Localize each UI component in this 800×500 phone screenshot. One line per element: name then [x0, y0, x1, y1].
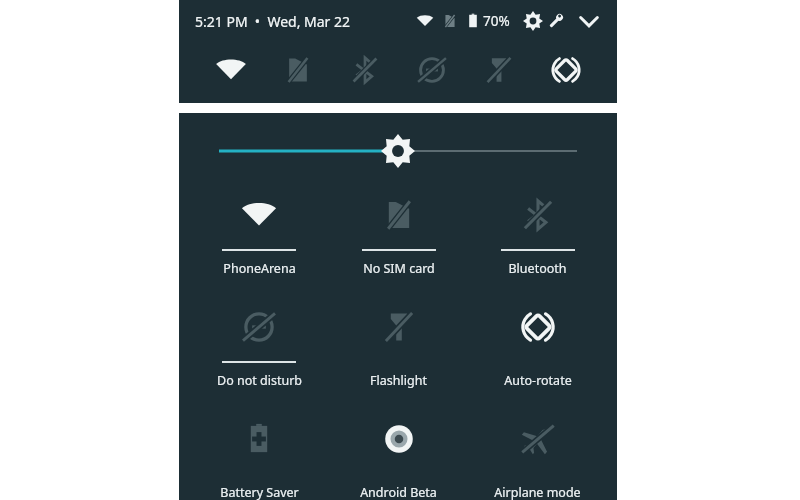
- button[interactable]: Expand: [577, 9, 601, 33]
- button[interactable]: Do not disturb: [398, 46, 465, 94]
- button[interactable]: Flashlight: [465, 46, 532, 94]
- button[interactable]: Auto-rotate: [468, 299, 607, 389]
- button[interactable]: Do not disturb: [189, 299, 329, 389]
- button[interactable]: Bluetooth: [468, 187, 607, 277]
- button[interactable]: Flashlight: [329, 299, 468, 389]
- staticText: 5:21 PM • Wed, Mar 22: [195, 12, 351, 31]
- button[interactable]: Bluetooth: [331, 46, 398, 94]
- staticText: Do not disturb: [217, 372, 302, 389]
- staticText: Auto-rotate: [504, 372, 572, 389]
- staticText: Android Beta: [360, 484, 437, 500]
- staticText: Flashlight: [370, 372, 427, 389]
- button[interactable]: No SIM card: [329, 187, 468, 277]
- button[interactable]: Auto-rotate: [532, 46, 599, 94]
- staticText: Airplane mode: [494, 484, 581, 500]
- staticText: Battery Saver: [220, 484, 299, 500]
- staticText: Bluetooth: [508, 260, 567, 277]
- staticText: No SIM card: [363, 260, 435, 277]
- button[interactable]: Airplane mode: [468, 411, 607, 500]
- staticText: PhoneArena: [223, 260, 296, 277]
- staticText: 70%: [483, 12, 510, 30]
- button[interactable]: Brightness: [219, 129, 577, 173]
- button[interactable]: Developer tools: [545, 11, 565, 31]
- button[interactable]: Settings: [522, 10, 544, 32]
- button[interactable]: Android Beta: [329, 411, 468, 500]
- button[interactable]: Battery Saver: [189, 411, 329, 500]
- button[interactable]: SIM: [264, 46, 331, 94]
- button[interactable]: Wi-Fi: [197, 46, 264, 94]
- button[interactable]: PhoneArena: [189, 187, 329, 277]
